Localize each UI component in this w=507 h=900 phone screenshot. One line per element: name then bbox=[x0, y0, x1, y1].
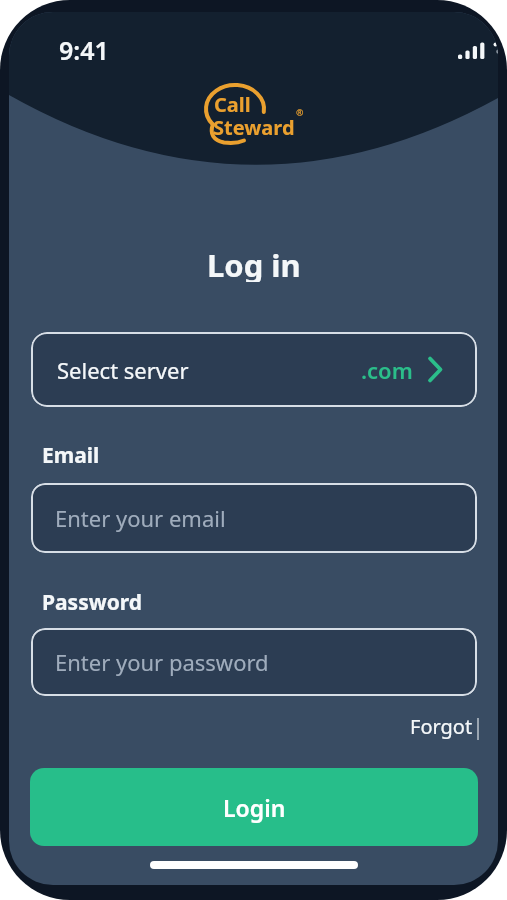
staticText: 9:41 bbox=[59, 33, 109, 61]
staticText: Forgot bbox=[410, 713, 473, 739]
button[interactable]: Login bbox=[30, 768, 478, 846]
staticText: Enter your password bbox=[55, 647, 269, 677]
staticText: Select server bbox=[57, 355, 189, 385]
staticText: Email bbox=[42, 441, 100, 467]
staticText: Call bbox=[214, 91, 251, 113]
staticText: ® bbox=[296, 106, 304, 118]
staticText: Login bbox=[223, 792, 286, 823]
staticText: Enter your email bbox=[55, 503, 226, 533]
staticText: Password bbox=[42, 588, 143, 614]
button[interactable]: Enter your password bbox=[31, 628, 477, 696]
staticText: Log in bbox=[207, 244, 301, 282]
staticText: Steward bbox=[213, 114, 295, 136]
button[interactable]: Forgot bbox=[355, 713, 473, 739]
button[interactable]: Enter your email bbox=[31, 483, 477, 553]
button[interactable]: Select server bbox=[31, 332, 477, 407]
staticText: .com bbox=[361, 355, 413, 385]
